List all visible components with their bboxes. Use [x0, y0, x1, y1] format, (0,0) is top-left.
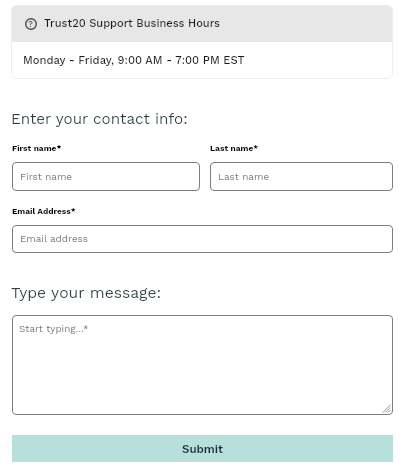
button[interactable]: Start typing…*	[12, 315, 393, 415]
staticText: Last name	[218, 171, 270, 183]
staticText: First name	[20, 171, 73, 183]
button[interactable]: Last name	[210, 162, 393, 191]
staticText: Monday - Friday, 9:00 AM - 7:00 PM EST	[23, 54, 245, 67]
staticText: Submit	[182, 442, 224, 456]
staticText: Last name*	[210, 143, 259, 153]
button[interactable]: Email address	[12, 225, 393, 253]
staticText: Enter your contact info:	[11, 110, 188, 128]
staticText: Type your message:	[11, 283, 162, 301]
button[interactable]: Submit	[12, 435, 393, 462]
button[interactable]: First name	[12, 162, 200, 191]
staticText: Trust20 Support Business Hours	[44, 17, 220, 30]
staticText: Email address	[20, 233, 89, 245]
staticText: Start typing…*	[19, 323, 89, 335]
staticText: ?	[28, 19, 34, 30]
staticText: Email Address*	[12, 206, 76, 216]
other: Help	[25, 18, 37, 30]
button[interactable]: Help	[11, 5, 393, 79]
staticText: First name*	[12, 143, 62, 153]
